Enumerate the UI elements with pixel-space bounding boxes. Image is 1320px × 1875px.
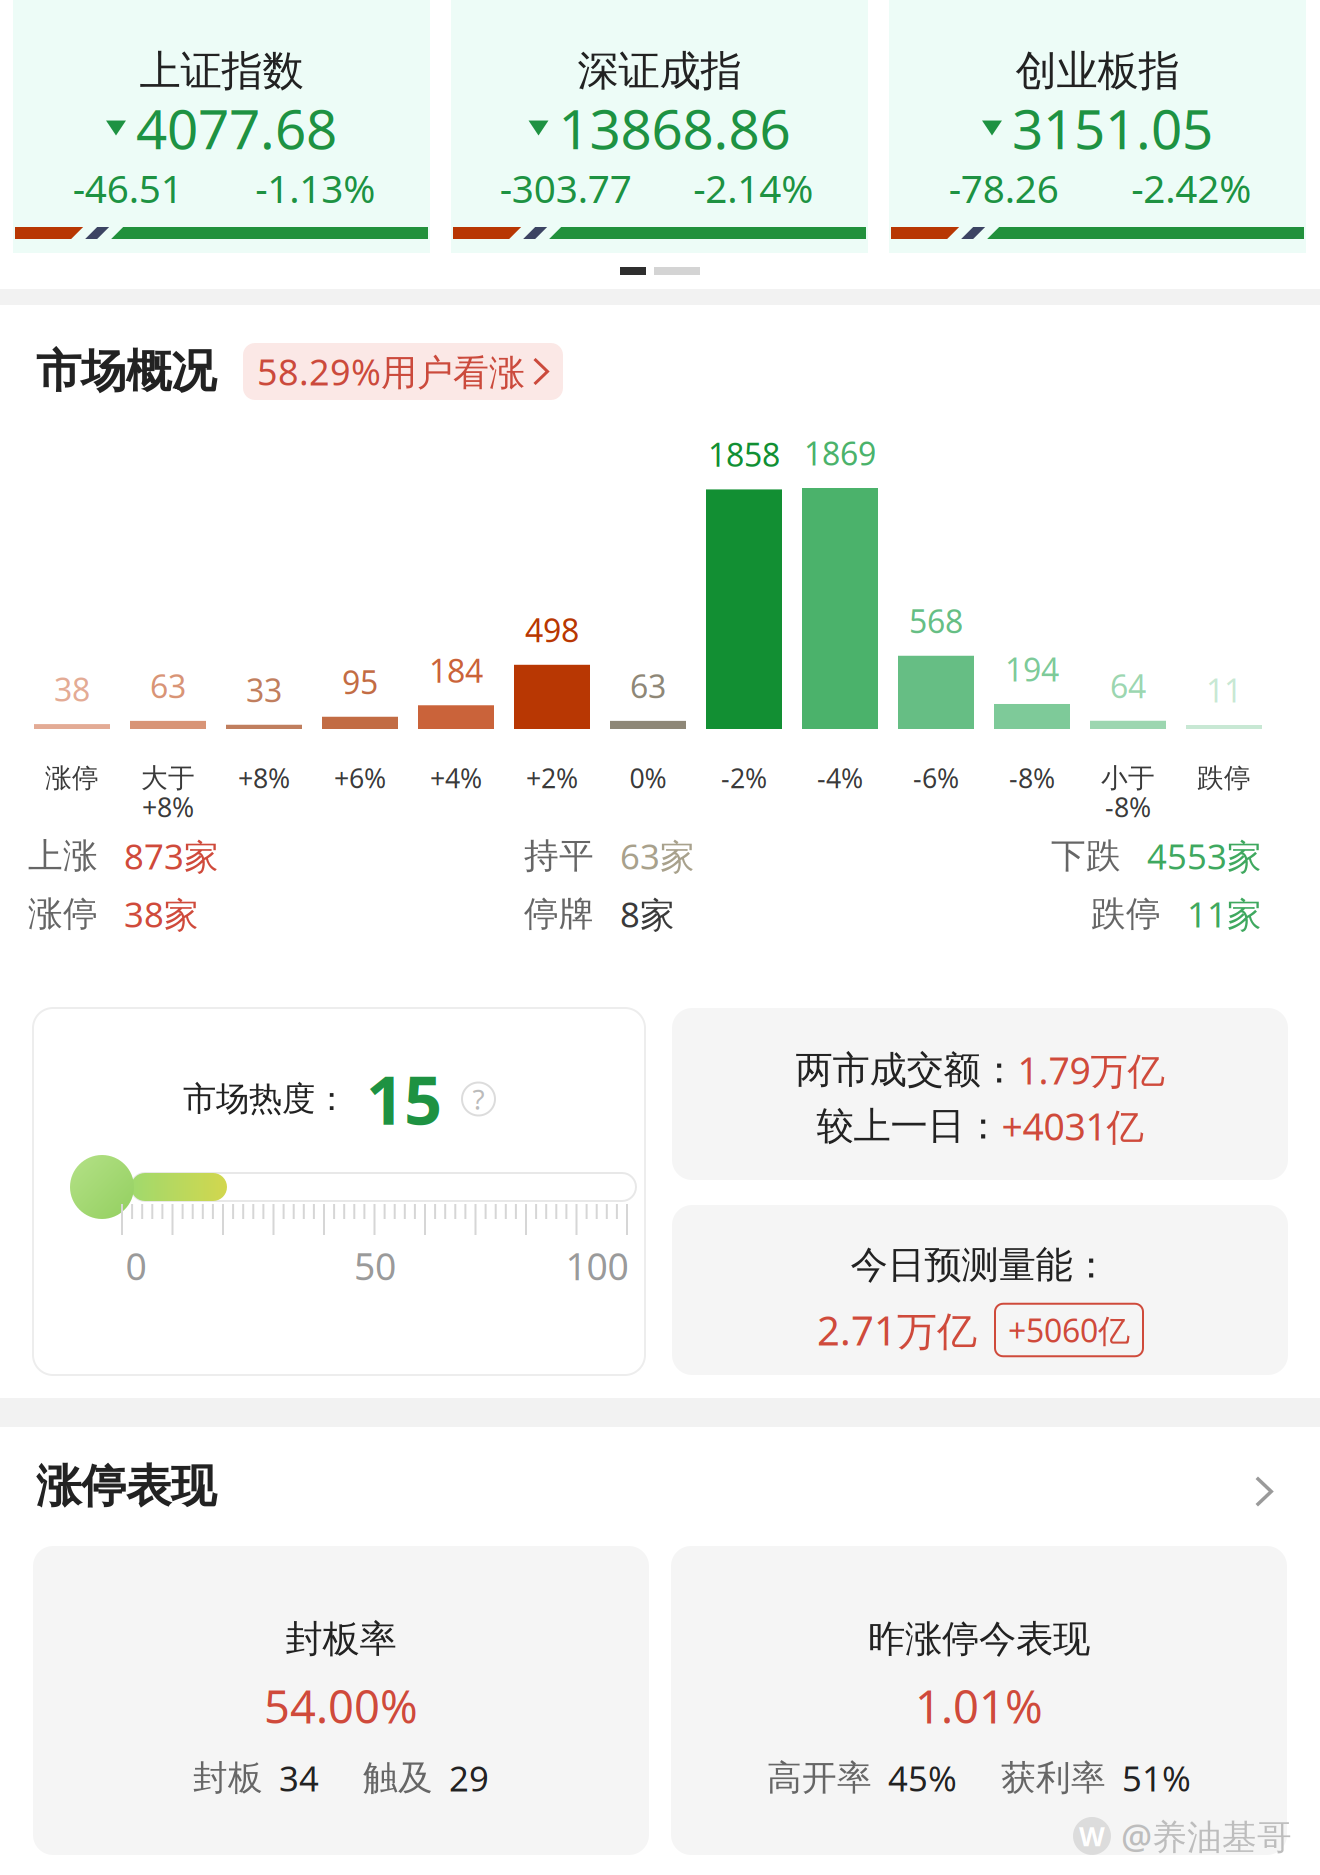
staticText: ? (472, 1080, 484, 1118)
staticText: +2% (526, 760, 578, 796)
button[interactable]: 封板率 (33, 1546, 649, 1855)
staticText: 上证指数 (139, 46, 303, 96)
staticText: 较上一日： (816, 1103, 1001, 1149)
staticText: 8家 (620, 891, 675, 937)
staticText: 33 (246, 668, 282, 711)
staticText: 194 (1005, 648, 1059, 690)
button[interactable]: 创业板指 (889, 0, 1306, 253)
staticText: 封板 (193, 1757, 263, 1799)
staticText: 54.00% (264, 1676, 418, 1736)
staticText: 0 (125, 1241, 146, 1291)
staticText: 0% (629, 760, 666, 796)
staticText: -1.13% (255, 162, 375, 214)
staticText: +4% (430, 760, 482, 796)
staticText: 45% (888, 1755, 957, 1801)
staticText: 1.79万亿 (1017, 1045, 1164, 1095)
staticText: -8% (1009, 760, 1055, 796)
staticText: 568 (909, 599, 963, 642)
staticText: 63 (150, 665, 186, 707)
staticText: 498 (525, 608, 579, 651)
staticText: -303.77 (500, 162, 632, 214)
staticText: 38 (54, 668, 90, 710)
staticText: 63家 (620, 833, 695, 879)
staticText: 下跌 (1051, 835, 1121, 877)
staticText: 1869 (804, 432, 876, 474)
staticText: 100 (565, 1241, 628, 1291)
staticText: -46.51 (73, 162, 183, 214)
staticText: 2.71万亿 (817, 1303, 977, 1356)
staticText: 64 (1110, 664, 1146, 707)
staticText: 上涨 (28, 835, 98, 877)
staticText: 跌停 (1197, 762, 1251, 794)
staticText: 63 (630, 665, 666, 707)
staticText: 涨停 (45, 762, 99, 794)
staticText: 873家 (124, 833, 219, 879)
staticText: -8% (1105, 789, 1151, 825)
staticText: +6% (334, 760, 386, 796)
staticText: -6% (913, 760, 959, 796)
staticText: 13868.86 (558, 92, 790, 164)
staticText: 深证成指 (577, 46, 741, 96)
staticText: -4% (817, 760, 863, 796)
staticText: 持平 (524, 835, 594, 877)
staticText: 1.01% (915, 1676, 1043, 1736)
staticText: -78.26 (949, 162, 1059, 214)
staticText: 38家 (124, 891, 199, 937)
staticText: 4077.68 (136, 92, 337, 164)
button[interactable]: 涨停表现 (0, 1427, 1320, 1546)
staticText: 触及 (363, 1757, 433, 1799)
staticText: 高开率 (767, 1757, 872, 1799)
button[interactable]: 上证指数 (13, 0, 430, 253)
staticText: 11家 (1187, 891, 1262, 937)
staticText: 涨停 (28, 893, 98, 935)
staticText: @养油基哥 (1121, 1813, 1292, 1859)
staticText: 50 (354, 1241, 396, 1291)
button[interactable]: 深证成指 (451, 0, 868, 253)
staticText: +5060亿 (1008, 1309, 1130, 1351)
button[interactable]: 昨涨停今表现 (671, 1546, 1287, 1855)
staticText: 11 (1206, 669, 1242, 711)
staticText: 29 (449, 1755, 489, 1801)
staticText: 市场概况 (36, 344, 216, 399)
staticText: 15 (366, 1055, 442, 1143)
staticText: 停牌 (524, 893, 594, 935)
staticText: 市场热度： (183, 1078, 348, 1119)
staticText: -2% (721, 760, 767, 796)
staticText: 涨停表现 (36, 1459, 216, 1514)
staticText: 小于 (1101, 762, 1155, 794)
staticText: 大于 (141, 762, 195, 794)
staticText: 95 (342, 660, 378, 703)
staticText: 获利率 (1001, 1757, 1106, 1799)
staticText: 51% (1122, 1755, 1191, 1801)
staticText: 58.29%用户看涨 (257, 348, 525, 395)
staticText: W (1079, 1818, 1105, 1854)
staticText: 今日预测量能： (850, 1242, 1109, 1288)
staticText: +8% (142, 789, 194, 825)
staticText: 1858 (708, 433, 780, 476)
staticText: 3151.05 (1012, 92, 1213, 164)
staticText: 4553家 (1147, 833, 1262, 879)
staticText: 封板率 (285, 1616, 396, 1662)
staticText: 创业板指 (1015, 46, 1179, 96)
staticText: 两市成交额： (795, 1047, 1017, 1093)
staticText: 跌停 (1091, 893, 1161, 935)
staticText: +4031亿 (1001, 1101, 1143, 1151)
staticText: +8% (238, 760, 290, 796)
staticText: -2.42% (1131, 162, 1251, 214)
staticText: 34 (279, 1755, 319, 1801)
button[interactable]: 58.29%用户看涨 (243, 343, 563, 400)
staticText: 184 (429, 649, 483, 691)
staticText: -2.14% (693, 162, 813, 214)
staticText: 昨涨停今表现 (868, 1616, 1090, 1662)
